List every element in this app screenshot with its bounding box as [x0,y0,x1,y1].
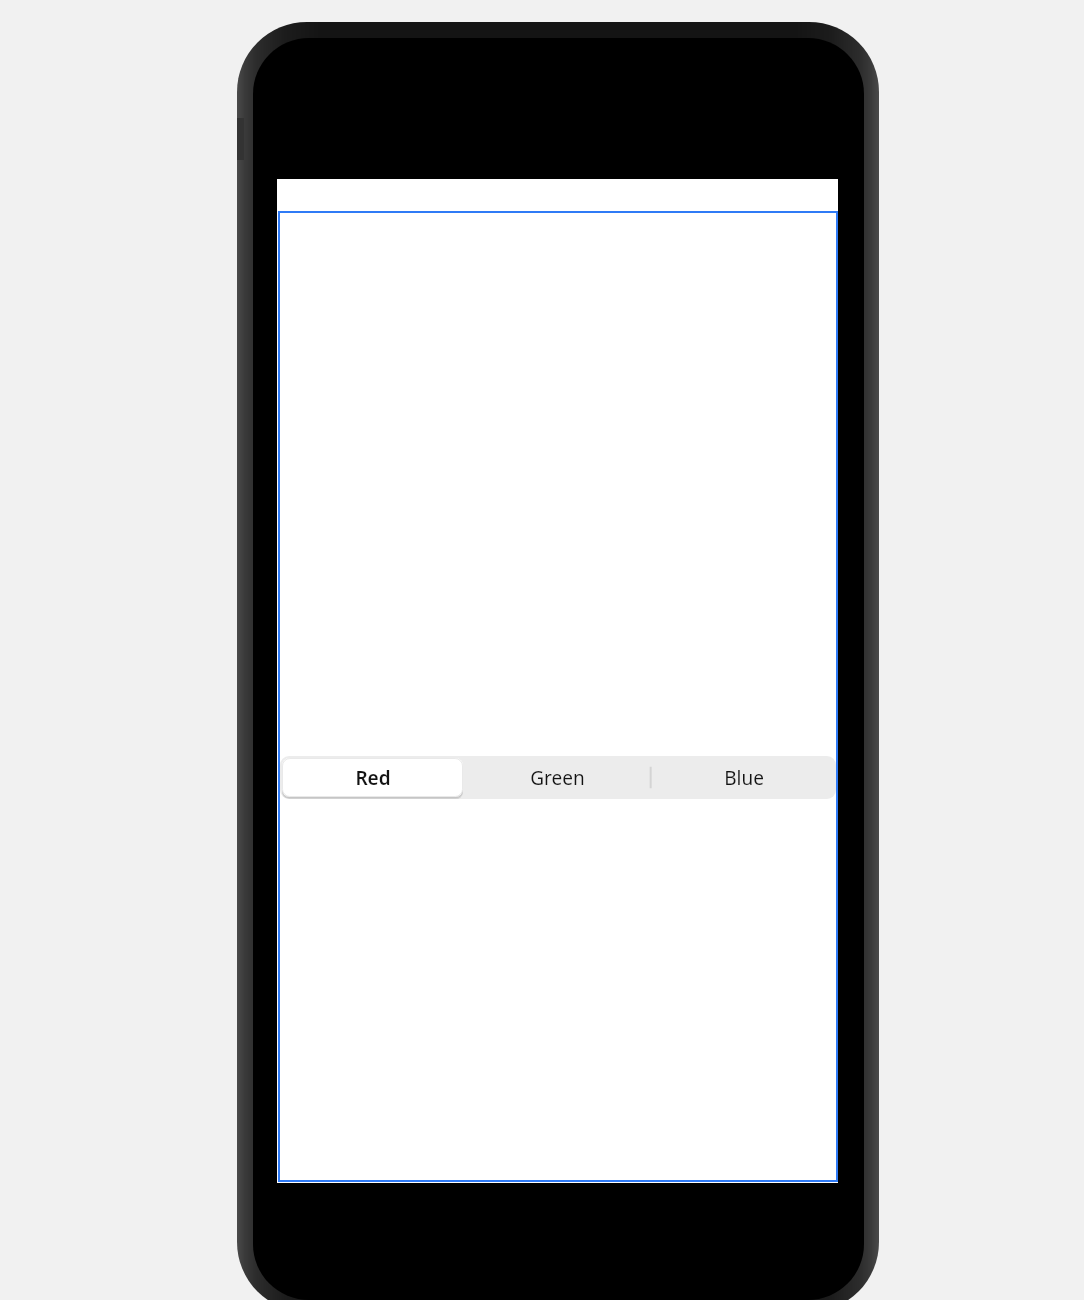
staticText: Red [355,765,391,791]
staticText: Blue [724,765,764,791]
staticText: Green [530,765,585,791]
button[interactable]: Green [465,756,650,799]
other: Colour selector [280,756,836,799]
button[interactable]: Red [280,756,465,799]
button[interactable]: Blue [651,756,836,799]
